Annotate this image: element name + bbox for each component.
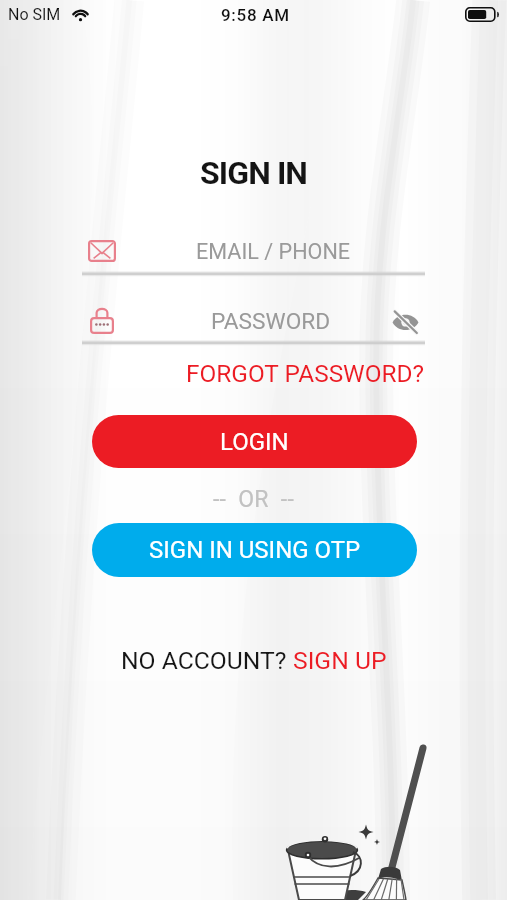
- staticText: EMAIL / PHONE: [196, 239, 351, 264]
- staticText: SIGN IN USING OTP: [149, 536, 361, 564]
- button[interactable]: PASSWORD: [82, 298, 425, 344]
- staticText: NO ACCOUNT?: [121, 646, 293, 675]
- button[interactable]: EMAIL / PHONE: [82, 229, 425, 275]
- staticText: No SIM: [8, 5, 61, 24]
- staticText: PASSWORD: [211, 308, 331, 335]
- button[interactable]: LOGIN: [92, 415, 417, 468]
- staticText: SIGN IN: [0, 154, 507, 192]
- staticText: LOGIN: [220, 428, 289, 456]
- button[interactable]: SIGN IN USING OTP: [92, 523, 417, 577]
- staticText: -- OR --: [0, 486, 507, 513]
- staticText: 9:58 AM: [221, 5, 290, 25]
- button[interactable]: FORGOT PASSWORD?: [186, 359, 425, 388]
- button[interactable]: SIGN UP: [293, 646, 387, 675]
- button[interactable]: Show password: [387, 303, 423, 339]
